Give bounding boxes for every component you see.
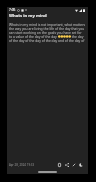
- button[interactable]: Edit: [70, 161, 77, 168]
- button[interactable]: Toggle theme: [77, 161, 84, 168]
- staticText: 7:05: [9, 8, 16, 12]
- staticText: the day: [71, 34, 84, 38]
- staticText: Whats in my mind: [9, 13, 47, 19]
- staticText: Whats in my mind is not important, what …: [9, 22, 86, 26]
- staticText: to a value of the day of the day: [9, 34, 58, 38]
- staticText: Apr 28, 2024 19:33: [9, 163, 35, 167]
- staticText: the way you are living the life of the d…: [9, 26, 86, 30]
- staticText: of the day of the day of the day and of …: [9, 38, 86, 42]
- button[interactable]: Share: [63, 161, 70, 168]
- button[interactable]: Copy: [56, 161, 63, 168]
- staticText: can start working on the goals you have …: [9, 30, 86, 34]
